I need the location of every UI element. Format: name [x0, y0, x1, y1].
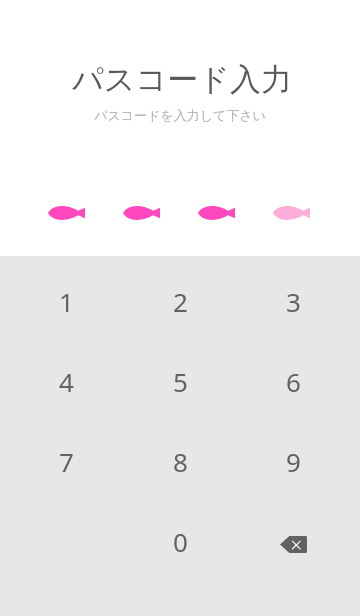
- staticText: 7: [59, 444, 74, 479]
- button[interactable]: 5: [130, 345, 230, 417]
- staticText: 8: [173, 444, 188, 479]
- button[interactable]: 8: [130, 425, 230, 497]
- button[interactable]: 3: [243, 265, 343, 337]
- button[interactable]: 0: [130, 505, 230, 577]
- staticText: 3: [286, 284, 301, 319]
- button[interactable]: Backspace: [243, 508, 343, 580]
- staticText: パスコード入力: [2, 60, 360, 99]
- button[interactable]: 6: [243, 345, 343, 417]
- staticText: 6: [286, 364, 301, 399]
- staticText: 0: [173, 524, 188, 559]
- button[interactable]: 4: [16, 345, 116, 417]
- button[interactable]: 2: [130, 265, 230, 337]
- staticText: 5: [173, 364, 188, 399]
- button[interactable]: 9: [243, 425, 343, 497]
- button[interactable]: 1: [16, 265, 116, 337]
- staticText: 9: [286, 444, 301, 479]
- staticText: 4: [59, 364, 74, 399]
- button[interactable]: 7: [16, 425, 116, 497]
- staticText: 1: [59, 284, 74, 319]
- staticText: 2: [173, 284, 188, 319]
- staticText: パスコードを入力して下さい: [0, 107, 360, 123]
